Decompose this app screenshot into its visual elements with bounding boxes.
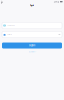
staticText: 9:41 [1,0,2,6]
button[interactable]: Forgot password? [0,50,64,53]
staticText: Sign In [30,4,34,6]
staticText: Sign In [29,44,35,47]
staticText: Email address [7,25,14,26]
button[interactable]: Password [2,31,62,37]
staticText: Password [7,34,12,35]
button[interactable]: Sign In [2,42,62,48]
staticText: Forgot password? [28,51,35,52]
button[interactable]: Email address [2,22,62,28]
